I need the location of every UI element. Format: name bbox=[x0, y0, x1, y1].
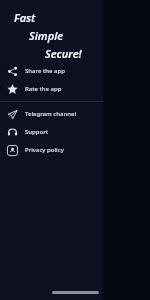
other: Telegram channel bbox=[7, 109, 18, 120]
button[interactable]: Support bbox=[0, 123, 103, 141]
button[interactable]: Telegram channel bbox=[0, 105, 103, 123]
other: Rate bbox=[7, 84, 18, 95]
button[interactable]: Rate bbox=[0, 80, 103, 98]
staticText: Secure! bbox=[45, 46, 82, 61]
staticText: Rate the app bbox=[25, 85, 62, 93]
staticText: Simple bbox=[29, 28, 64, 43]
staticText: Support bbox=[25, 128, 49, 136]
staticText: Telegram channel bbox=[25, 110, 77, 118]
staticText: Share the app bbox=[25, 67, 65, 75]
other: Support bbox=[7, 127, 18, 138]
button[interactable]: Privacy policy bbox=[0, 141, 103, 159]
other: Privacy policy bbox=[7, 145, 18, 156]
other: Share bbox=[7, 66, 18, 77]
button[interactable]: Share bbox=[0, 62, 103, 80]
staticText: Privacy policy bbox=[25, 146, 64, 154]
staticText: Fast bbox=[14, 10, 36, 25]
